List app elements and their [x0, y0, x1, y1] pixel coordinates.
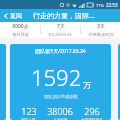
staticText: 38006	[47, 105, 73, 117]
button[interactable]: 团队第5天/2017.03.24	[10, 44, 111, 120]
staticText: 3天	[97, 23, 105, 30]
staticText: 22:53	[106, 2, 118, 8]
staticText: 行走的力量，国际…	[33, 11, 95, 21]
button[interactable]: 7天	[41, 22, 80, 38]
button[interactable]	[0, 44, 6, 120]
staticText: 返回	[10, 12, 22, 20]
button[interactable]: 8000步	[0, 22, 40, 38]
staticText: 人均步数	[53, 118, 68, 120]
staticText: 8000步	[12, 23, 29, 30]
staticText: 团队人数	[21, 118, 36, 120]
staticText: 03.20-03.26	[49, 32, 72, 38]
staticText: 团队第5天/2017.03.24	[35, 48, 86, 55]
button[interactable]: 3天	[81, 22, 120, 38]
staticText: 万	[83, 80, 91, 90]
staticText: 团队累计完成步数	[44, 94, 78, 99]
button[interactable]: 返回	[0, 10, 25, 22]
staticText: 123	[21, 105, 37, 117]
button[interactable]	[118, 44, 120, 120]
staticText: 结果剩余时间	[88, 32, 114, 37]
staticText: 296	[84, 105, 100, 117]
staticText: 1592	[31, 62, 82, 92]
staticText: 7天	[57, 23, 65, 30]
staticText: 每日目标	[12, 32, 29, 37]
staticText: 71%	[96, 3, 104, 8]
staticText: 全国团队排名	[81, 118, 103, 120]
